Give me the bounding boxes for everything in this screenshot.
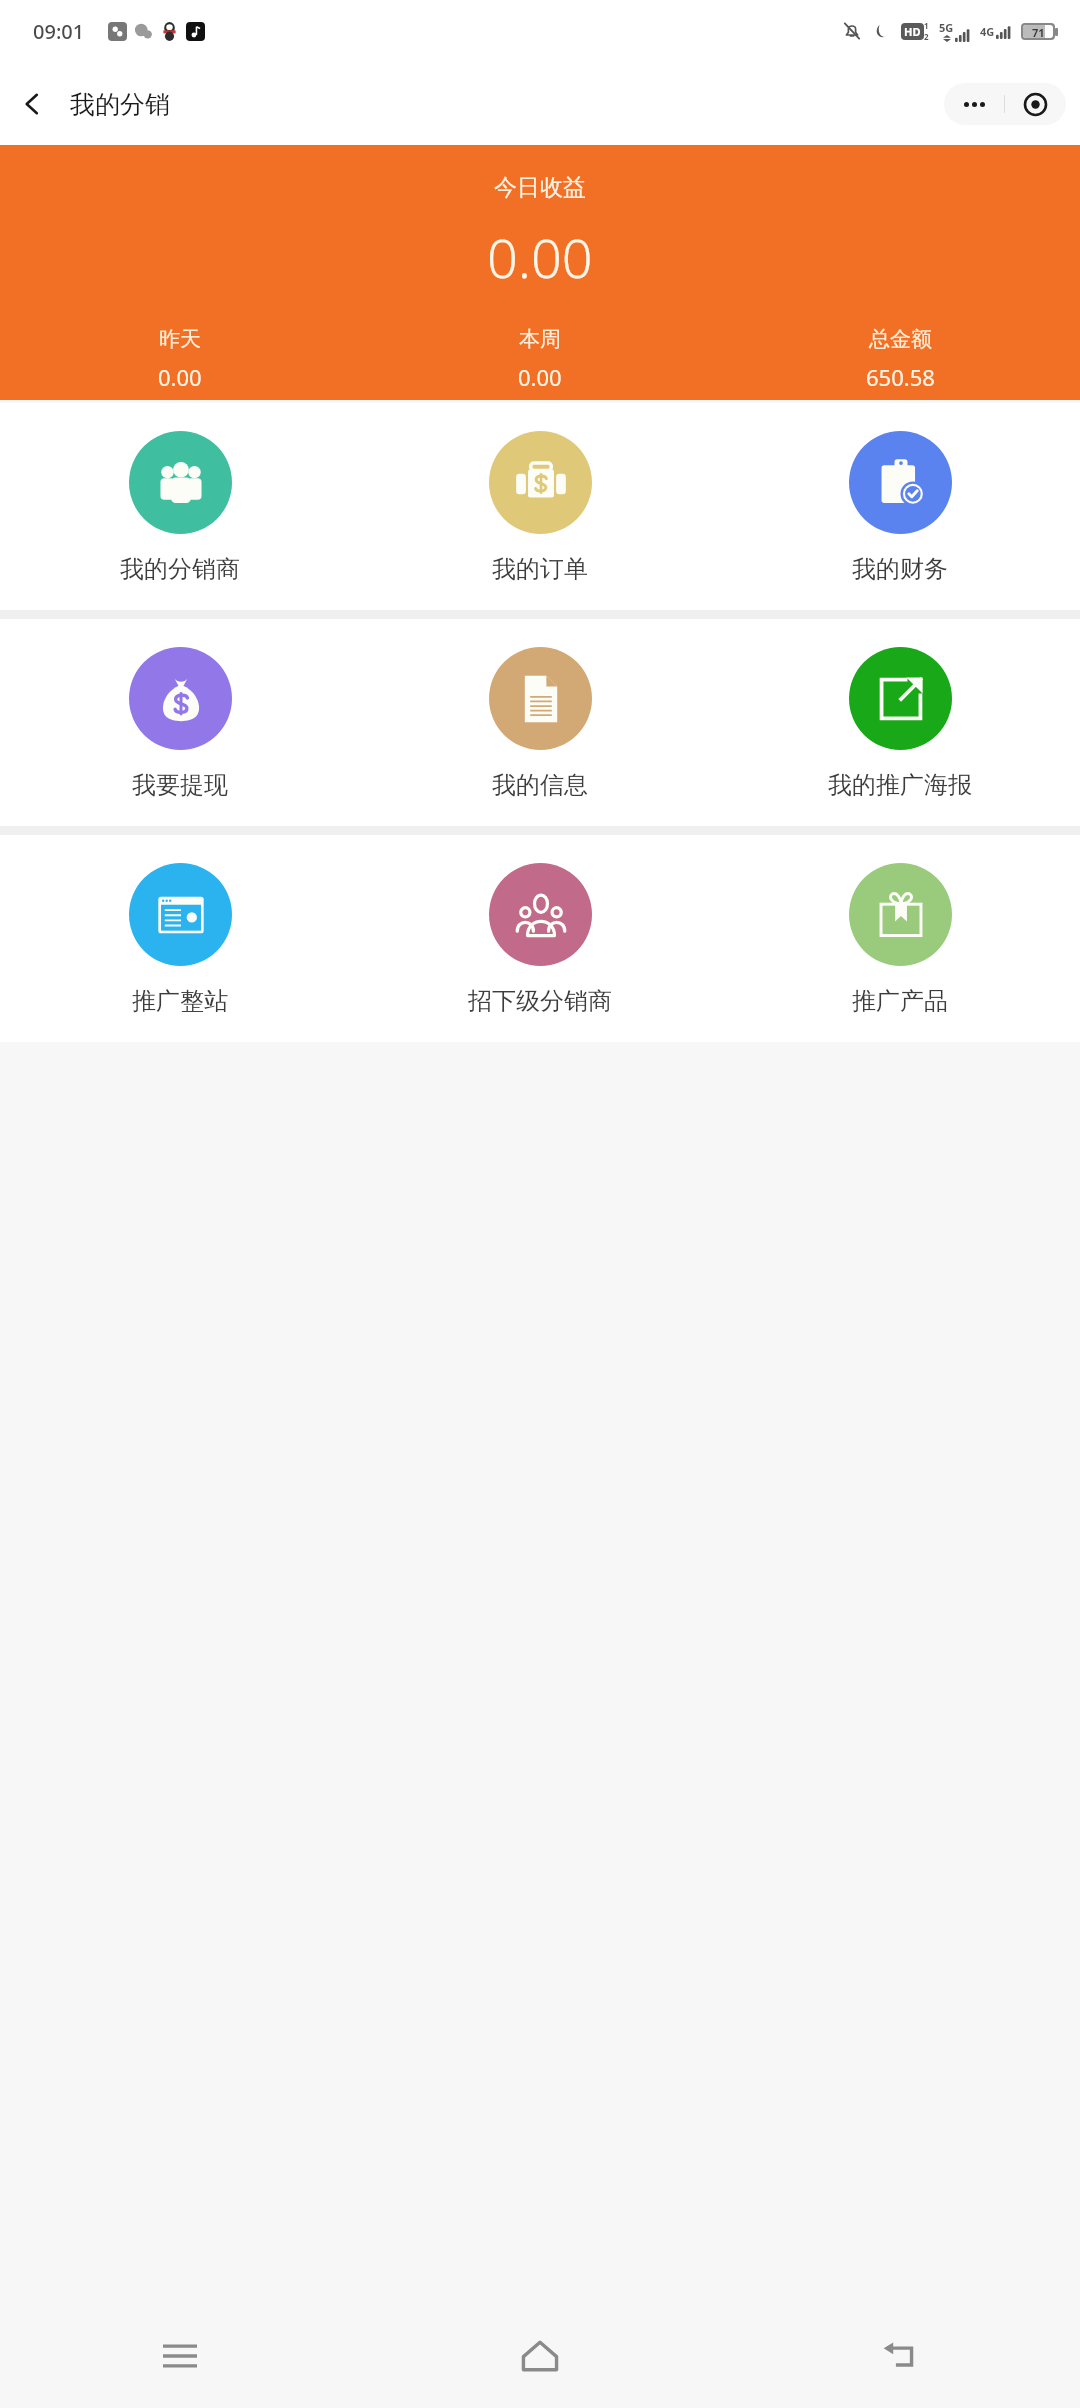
staticText: 招下级分销商 <box>468 986 612 1016</box>
staticText: 今日收益 <box>494 173 586 202</box>
staticText: 我的分销 <box>70 89 170 120</box>
staticText: 推广产品 <box>852 986 948 1016</box>
staticText: 4G <box>980 24 995 39</box>
button[interactable]: Back <box>720 2304 1080 2408</box>
staticText: 本周 <box>519 326 561 352</box>
staticText: 0.00 <box>158 362 202 392</box>
staticText: 推广整站 <box>132 986 228 1016</box>
button[interactable]: Mini program menu <box>944 83 1066 125</box>
staticText: 09:01 <box>33 18 85 45</box>
button[interactable]: 我的订单 <box>360 427 720 588</box>
staticText: 0.00 <box>487 220 593 294</box>
staticText: 昨天 <box>159 326 201 352</box>
button[interactable]: 招下级分销商 <box>360 859 720 1020</box>
staticText: 0.00 <box>518 362 562 392</box>
staticText: 1 <box>924 20 929 31</box>
button[interactable]: 推广整站 <box>0 859 360 1020</box>
staticText: 650.58 <box>866 362 935 392</box>
staticText: 我要提现 <box>132 770 228 800</box>
button[interactable]: 我的财务 <box>720 427 1080 588</box>
button[interactable]: Home <box>360 2304 720 2408</box>
staticText: 5G <box>939 20 954 35</box>
button[interactable]: 我的分销商 <box>0 427 360 588</box>
staticText: 我的信息 <box>492 770 588 800</box>
staticText: 我的财务 <box>852 554 948 584</box>
staticText: 71 <box>1032 25 1045 38</box>
button[interactable]: 我的信息 <box>360 643 720 804</box>
button[interactable]: 我要提现 <box>0 643 360 804</box>
button[interactable]: 我的推广海报 <box>720 643 1080 804</box>
staticText: 总金额 <box>869 326 932 352</box>
button[interactable]: Back <box>0 72 64 136</box>
staticText: 我的分销商 <box>120 554 240 584</box>
staticText: 我的推广海报 <box>828 770 972 800</box>
button[interactable]: 推广产品 <box>720 859 1080 1020</box>
staticText: HD <box>904 24 921 39</box>
staticText: 2 <box>924 31 929 42</box>
staticText: 我的订单 <box>492 554 588 584</box>
button[interactable]: Recent apps <box>0 2304 360 2408</box>
